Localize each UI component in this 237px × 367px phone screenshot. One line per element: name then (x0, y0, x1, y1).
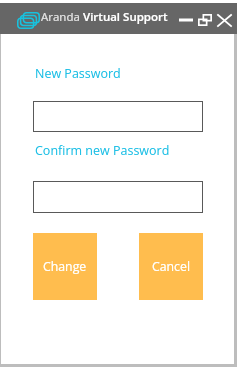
staticText: New Password (35, 65, 121, 82)
button[interactable]: Change (33, 233, 97, 300)
staticText: Aranda (41, 9, 83, 25)
staticText: Confirm new Password (35, 142, 170, 159)
button[interactable]: Cancel (139, 233, 203, 300)
button[interactable]: Restore (195, 8, 214, 32)
staticText: Virtual Support (83, 9, 168, 25)
staticText: Change (43, 258, 87, 275)
button[interactable] (33, 181, 203, 213)
button[interactable]: Minimize (176, 8, 195, 32)
button[interactable]: Close (214, 8, 234, 32)
button[interactable] (33, 101, 203, 132)
staticText: Cancel (152, 258, 191, 275)
